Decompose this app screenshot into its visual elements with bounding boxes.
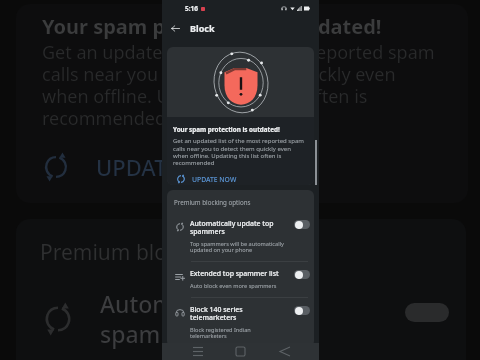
button[interactable]: Extended top spammer list: [167, 262, 314, 297]
staticText: Get an updated list of the most reported…: [173, 137, 304, 166]
button[interactable]: Home: [232, 343, 249, 360]
button[interactable]: Back: [162, 15, 188, 41]
button[interactable]: Toggle: [294, 306, 310, 315]
staticText: Your spam protection is outdated!: [42, 13, 382, 40]
button[interactable]: Toggle: [294, 270, 310, 279]
staticText: Get an updated list of the most reported…: [42, 40, 435, 131]
staticText: Block 140 series telemarketers: [190, 305, 243, 322]
staticText: UPDATE NOW: [96, 152, 240, 182]
staticText: Top spammers will be automatically updat…: [190, 240, 284, 254]
staticText: Autom spamm: [100, 288, 183, 350]
staticText: Auto block even more spammers: [190, 282, 277, 290]
button[interactable]: Block 140 series telemarketers: [167, 298, 314, 347]
staticText: Your spam protection is outdated!: [173, 125, 280, 134]
staticText: Block registered Indian telemarketers: [190, 326, 251, 340]
staticText: Extended top spammer list: [190, 269, 279, 278]
staticText: Premium blocking options: [174, 198, 251, 206]
button[interactable]: Automatically update top spammers: [167, 212, 314, 261]
button[interactable]: UPDATE NOW: [173, 174, 237, 184]
staticText: Premium blocking options: [40, 238, 300, 267]
staticText: Automatically update top spammers: [190, 219, 274, 236]
button[interactable]: Back: [276, 343, 293, 360]
staticText: 5:16: [185, 4, 198, 13]
button[interactable]: Toggle: [294, 220, 310, 229]
button[interactable]: Recents: [189, 343, 206, 360]
staticText: Block: [190, 22, 215, 34]
staticText: UPDATE NOW: [192, 175, 237, 184]
